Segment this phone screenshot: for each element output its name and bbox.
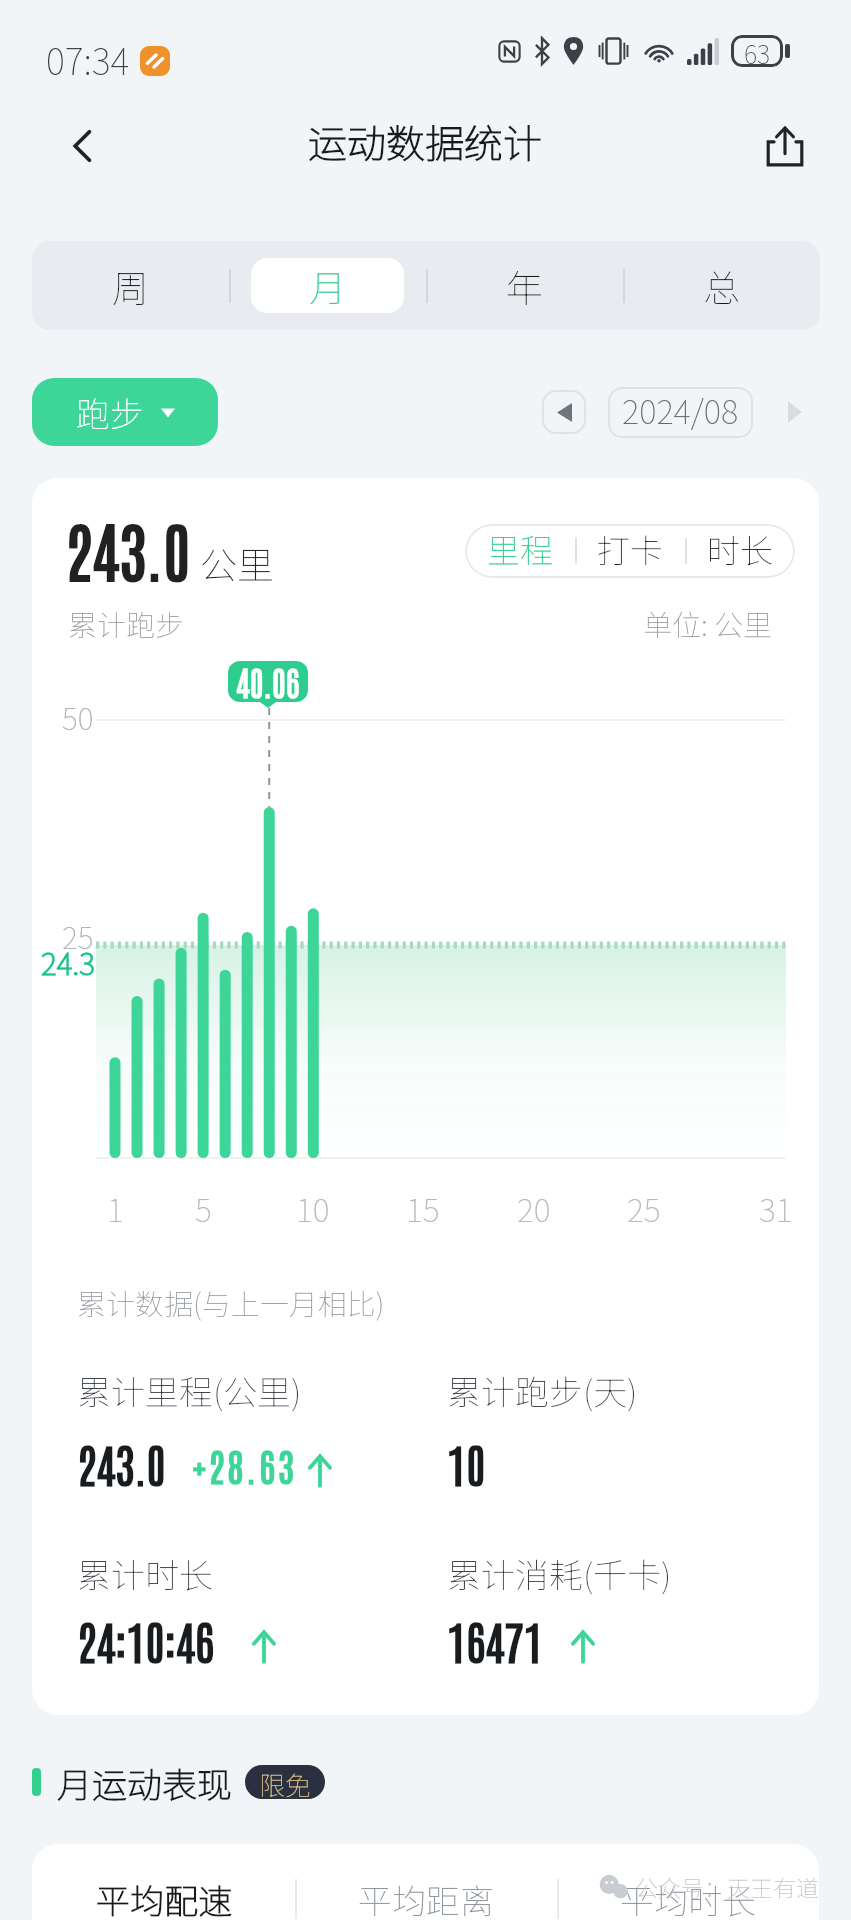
staticText: 243.0	[77, 1433, 166, 1493]
staticText: 40.06	[236, 661, 300, 701]
staticText: 周	[112, 259, 149, 313]
staticText: 2024/08	[622, 387, 739, 434]
staticText: 里程	[487, 525, 553, 573]
staticText: 累计跑步	[68, 602, 185, 644]
staticText: 平均距离	[358, 1875, 494, 1920]
button[interactable]: 平均时长	[557, 1866, 819, 1920]
staticText: 打卡	[597, 525, 663, 573]
staticText: 平均时长	[620, 1875, 756, 1920]
staticText: 10	[447, 1433, 486, 1493]
button[interactable]: 里程	[465, 524, 575, 578]
staticText: 公众号：天王有道	[635, 1870, 819, 1903]
button[interactable]: 平均距离	[295, 1866, 557, 1920]
staticText: 25	[62, 914, 94, 957]
staticText: 50	[62, 695, 94, 738]
staticText: 16471	[447, 1610, 543, 1670]
staticText: 20	[517, 1185, 551, 1231]
staticText: 总	[703, 259, 740, 313]
staticText: +28.63	[193, 1440, 297, 1489]
staticText: 10	[296, 1185, 330, 1231]
staticText: 24.3	[41, 940, 95, 983]
staticText: 07:34	[46, 33, 130, 85]
staticText: 243.0	[65, 506, 191, 590]
staticText: 单位: 公里	[643, 602, 773, 644]
staticText: 累计时长	[77, 1549, 213, 1598]
staticText: 平均配速	[96, 1875, 232, 1920]
button[interactable]: 总	[623, 241, 820, 330]
button[interactable]: 周	[32, 241, 229, 330]
button[interactable]: 年	[426, 241, 623, 330]
staticText: 跑步	[76, 388, 144, 437]
staticText: 25	[627, 1185, 661, 1231]
staticText: 累计消耗(千卡)	[447, 1549, 672, 1598]
button[interactable]: 平均配速	[32, 1866, 295, 1920]
staticText: 31	[759, 1185, 793, 1231]
staticText: 运动数据统计	[308, 113, 543, 169]
staticText: 月	[309, 259, 346, 313]
staticText: 时长	[707, 525, 773, 573]
button[interactable]: 2024/08	[608, 387, 753, 438]
staticText: 1	[107, 1185, 124, 1231]
staticText: 累计跑步(天)	[447, 1366, 638, 1415]
staticText: 63	[744, 35, 771, 67]
staticText: 年	[506, 259, 543, 313]
staticText: 24:10:46	[77, 1610, 215, 1670]
button[interactable]: Previous month	[542, 390, 586, 434]
button[interactable]: 时长	[685, 524, 795, 578]
staticText: 15	[406, 1185, 440, 1231]
button[interactable]: Share	[755, 116, 815, 176]
staticText: 限免	[259, 1765, 312, 1799]
staticText: 公里	[200, 536, 274, 590]
staticText: 月运动表现	[57, 1757, 233, 1808]
staticText: 累计数据(与上一月相比)	[77, 1281, 385, 1323]
staticText: 累计里程(公里)	[77, 1366, 302, 1415]
staticText: 5	[195, 1185, 212, 1231]
button[interactable]: 跑步	[32, 378, 218, 446]
button[interactable]: Back	[52, 116, 112, 176]
button[interactable]: 月	[229, 241, 426, 330]
button[interactable]: Next month	[771, 388, 819, 436]
button[interactable]: 打卡	[575, 524, 685, 578]
